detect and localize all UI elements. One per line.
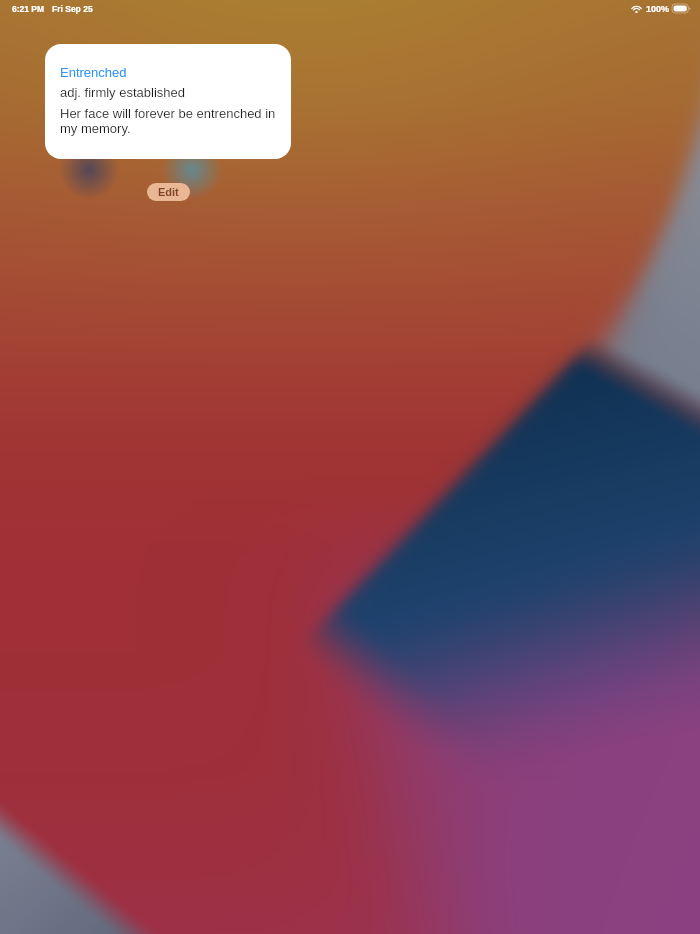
button[interactable]: Entrenched <box>45 44 291 159</box>
staticText: Entrenched <box>60 65 127 80</box>
staticText: 6:21 PM <box>12 4 45 13</box>
staticText: adj. firmly established <box>60 85 185 100</box>
other: Wi-Fi <box>631 5 642 13</box>
staticText: Fri Sep 25 <box>52 4 93 13</box>
staticText: Edit <box>158 186 179 198</box>
staticText: Her face will forever be entrenched in m… <box>60 106 277 136</box>
other: Battery 100 percent <box>672 4 691 13</box>
button[interactable]: Edit <box>147 183 190 201</box>
staticText: 100% <box>646 4 670 14</box>
